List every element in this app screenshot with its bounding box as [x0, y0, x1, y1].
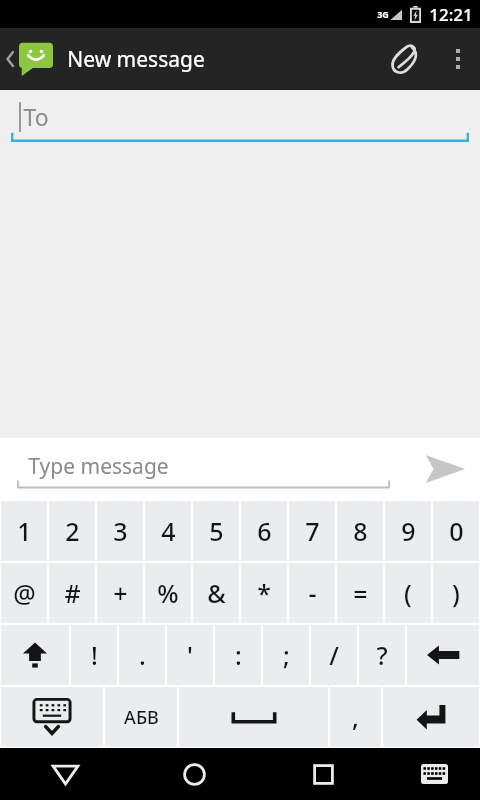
button[interactable]: Home [130, 748, 259, 800]
button[interactable]: Switch keyboard [388, 748, 480, 800]
button[interactable]: Recent apps [259, 748, 388, 800]
staticText: ( [404, 576, 412, 610]
button[interactable]: ) [433, 563, 479, 623]
button[interactable]: Type message [17, 445, 390, 493]
button[interactable]: , [330, 687, 381, 747]
button[interactable]: . [119, 625, 165, 685]
button[interactable]: Shift [1, 625, 69, 685]
staticText: % [157, 576, 179, 610]
staticText: Type message [28, 452, 169, 481]
staticText: 7 [305, 514, 320, 548]
staticText: To [23, 101, 49, 132]
staticText: 5 [209, 514, 224, 548]
button[interactable]: ? [359, 625, 405, 685]
button[interactable]: 9 [385, 501, 431, 561]
button[interactable]: ' [167, 625, 213, 685]
staticText: ? [376, 638, 388, 672]
button[interactable]: Attach [374, 28, 436, 90]
button[interactable]: * [241, 563, 287, 623]
button[interactable]: 6 [241, 501, 287, 561]
button[interactable]: 2 [49, 501, 95, 561]
button[interactable]: 4 [145, 501, 191, 561]
button[interactable]: 0 [433, 501, 479, 561]
staticText: / [329, 638, 339, 672]
button[interactable]: / [311, 625, 357, 685]
button[interactable]: АБВ [105, 687, 177, 747]
staticText: АБВ [124, 705, 159, 730]
staticText: 4 [161, 514, 176, 548]
button[interactable]: # [49, 563, 95, 623]
button[interactable]: + [97, 563, 143, 623]
button[interactable]: : [215, 625, 261, 685]
button[interactable]: - [289, 563, 335, 623]
staticText: ; [283, 638, 290, 672]
staticText: 1 [17, 514, 32, 548]
staticText: & [207, 576, 226, 610]
button[interactable]: Navigate up [0, 33, 57, 85]
staticText: New message [67, 45, 205, 74]
button[interactable]: More options [436, 28, 480, 90]
staticText: @ [13, 576, 36, 610]
staticText: * [257, 576, 271, 610]
staticText: ' [187, 638, 193, 672]
staticText: - [308, 576, 317, 610]
staticText: # [64, 576, 81, 610]
button[interactable]: To [0, 90, 480, 148]
button[interactable]: Send [410, 438, 480, 500]
staticText: = [353, 576, 368, 610]
staticText: 3 [113, 514, 128, 548]
button[interactable]: 5 [193, 501, 239, 561]
button[interactable]: 1 [1, 501, 47, 561]
button[interactable]: ( [385, 563, 431, 623]
staticText: 2 [65, 514, 80, 548]
staticText: ! [91, 638, 98, 672]
staticText: + [113, 576, 128, 610]
button[interactable]: & [193, 563, 239, 623]
staticText: , [352, 700, 359, 734]
button[interactable]: = [337, 563, 383, 623]
staticText: 8 [353, 514, 368, 548]
button[interactable]: % [145, 563, 191, 623]
button[interactable]: ! [71, 625, 117, 685]
button[interactable]: Backspace [407, 625, 479, 685]
button[interactable]: @ [1, 563, 47, 623]
staticText: 3G [377, 8, 389, 20]
button[interactable]: ; [263, 625, 309, 685]
staticText: 0 [449, 514, 464, 548]
staticText: . [139, 638, 146, 672]
staticText: 12:21 [429, 3, 473, 26]
staticText: ) [452, 576, 460, 610]
button[interactable]: Enter [383, 687, 479, 747]
staticText: 9 [401, 514, 416, 548]
button[interactable]: Space [179, 687, 328, 747]
button[interactable]: Back [0, 748, 130, 800]
staticText: 6 [257, 514, 272, 548]
button[interactable]: 3 [97, 501, 143, 561]
button[interactable]: 8 [337, 501, 383, 561]
button[interactable]: Hide keyboard [1, 687, 103, 747]
staticText: : [235, 638, 242, 672]
button[interactable]: 7 [289, 501, 335, 561]
